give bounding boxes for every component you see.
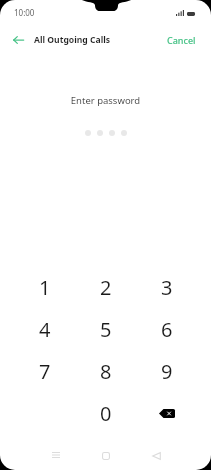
button[interactable]: 4 — [14, 308, 75, 350]
staticText: 10:00 — [14, 7, 35, 18]
staticText: 8 — [100, 358, 112, 385]
button[interactable]: Home — [81, 449, 131, 461]
button[interactable]: Back — [0, 24, 36, 56]
staticText: 0 — [100, 400, 112, 427]
staticText: Enter password — [0, 94, 211, 107]
button[interactable]: 0 — [75, 392, 136, 434]
button[interactable]: 2 — [75, 266, 136, 308]
staticText: Cancel — [167, 34, 196, 46]
staticText: 6 — [161, 316, 173, 343]
staticText: 2 — [100, 274, 112, 301]
button[interactable]: Recent apps — [31, 449, 81, 461]
staticText: 5 — [100, 316, 112, 343]
button[interactable]: 7 — [14, 350, 75, 392]
button[interactable]: 8 — [75, 350, 136, 392]
button[interactable]: 5 — [75, 308, 136, 350]
button[interactable]: 6 — [136, 308, 197, 350]
staticText: 4 — [39, 316, 51, 343]
staticText: All Outgoing Calls — [34, 34, 111, 46]
other: Backspace — [159, 409, 175, 418]
staticText: 3 — [161, 274, 173, 301]
button[interactable]: Cancel — [150, 28, 211, 52]
staticText: 9 — [161, 358, 173, 385]
button[interactable]: 3 — [136, 266, 197, 308]
button[interactable]: Back — [131, 449, 181, 461]
staticText: 7 — [39, 358, 51, 385]
button[interactable]: Backspace — [136, 392, 197, 434]
button[interactable]: 1 — [14, 266, 75, 308]
button[interactable]: 9 — [136, 350, 197, 392]
staticText: 1 — [39, 274, 51, 301]
